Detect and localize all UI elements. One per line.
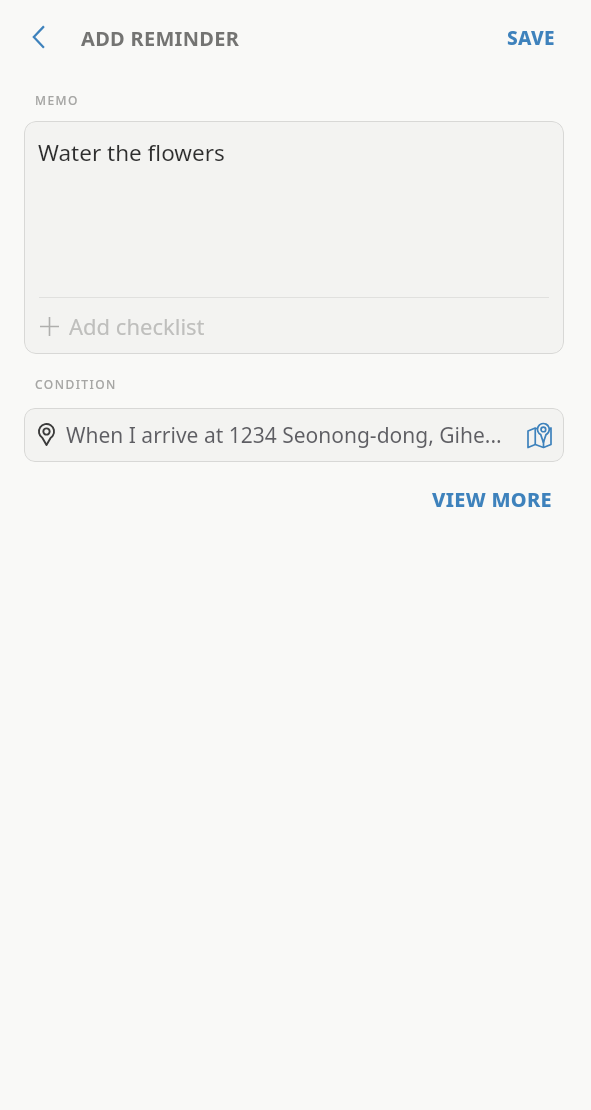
- button[interactable]: Back: [10, 8, 68, 66]
- staticText: Water the flowers: [38, 137, 225, 168]
- button[interactable]: Open map: [524, 420, 554, 450]
- button[interactable]: When I arrive at 1234 Seonong-dong, Gihe…: [24, 408, 564, 462]
- button[interactable]: SAVE: [489, 14, 573, 62]
- staticText: CONDITION: [35, 376, 117, 392]
- button[interactable]: VIEW MORE: [412, 476, 573, 523]
- staticText: SAVE: [507, 25, 555, 51]
- staticText: Add checklist: [69, 311, 205, 341]
- staticText: When I arrive at 1234 Seonong-dong, Gihe…: [66, 421, 518, 450]
- button[interactable]: Add checklist: [24, 298, 564, 354]
- button[interactable]: Water the flowers: [24, 121, 564, 297]
- staticText: VIEW MORE: [432, 486, 553, 513]
- staticText: MEMO: [35, 92, 79, 108]
- staticText: ADD REMINDER: [81, 25, 240, 52]
